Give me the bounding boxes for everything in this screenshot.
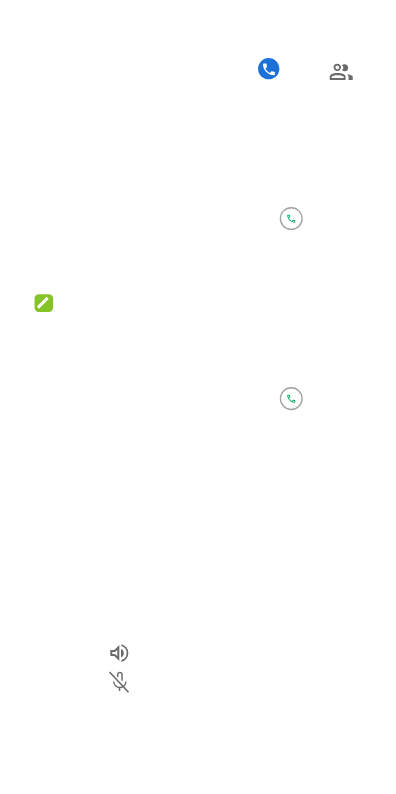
button[interactable]: Edit [34, 294, 53, 312]
button[interactable]: Call [244, 45, 292, 93]
button[interactable]: Call back [271, 198, 311, 238]
button[interactable]: Contacts [317, 47, 365, 95]
button[interactable]: Speaker [105, 639, 133, 667]
button[interactable]: Call back [271, 378, 311, 418]
button[interactable]: Mute microphone [105, 668, 133, 696]
